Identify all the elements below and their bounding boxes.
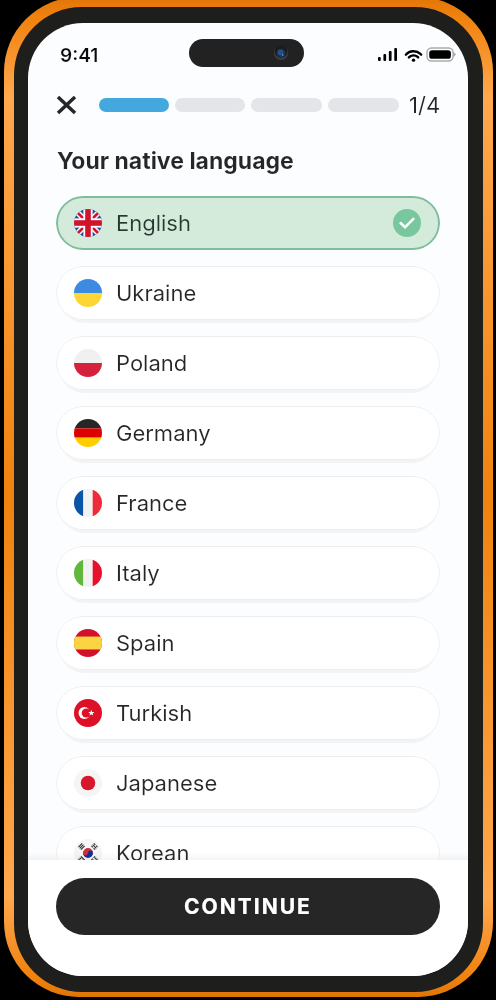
staticText: English [116, 210, 191, 237]
staticText: CONTINUE [184, 894, 312, 919]
staticText: France [116, 490, 188, 517]
staticText: 9:41 [60, 44, 99, 67]
button[interactable]: Turkish [56, 686, 440, 740]
staticText: Your native language [57, 147, 294, 175]
button[interactable]: Poland [56, 336, 440, 390]
staticText: Germany [116, 420, 211, 447]
button[interactable]: CONTINUE [56, 878, 440, 935]
staticText: 1/4 [409, 92, 441, 119]
button[interactable]: Germany [56, 406, 440, 460]
button[interactable]: Ukraine [56, 266, 440, 320]
button[interactable]: Italy [56, 546, 440, 600]
staticText: Poland [116, 350, 188, 377]
staticText: Ukraine [116, 280, 197, 307]
staticText: Korean [116, 840, 190, 867]
staticText: Turkish [116, 700, 193, 727]
button[interactable]: Close [49, 88, 83, 122]
staticText: Japanese [116, 770, 218, 797]
button[interactable]: Japanese [56, 756, 440, 810]
button[interactable]: Korean [56, 826, 440, 880]
button[interactable]: English [56, 196, 440, 250]
staticText: Spain [116, 630, 175, 657]
button[interactable]: France [56, 476, 440, 530]
button[interactable]: Spain [56, 616, 440, 670]
staticText: Italy [116, 560, 160, 587]
